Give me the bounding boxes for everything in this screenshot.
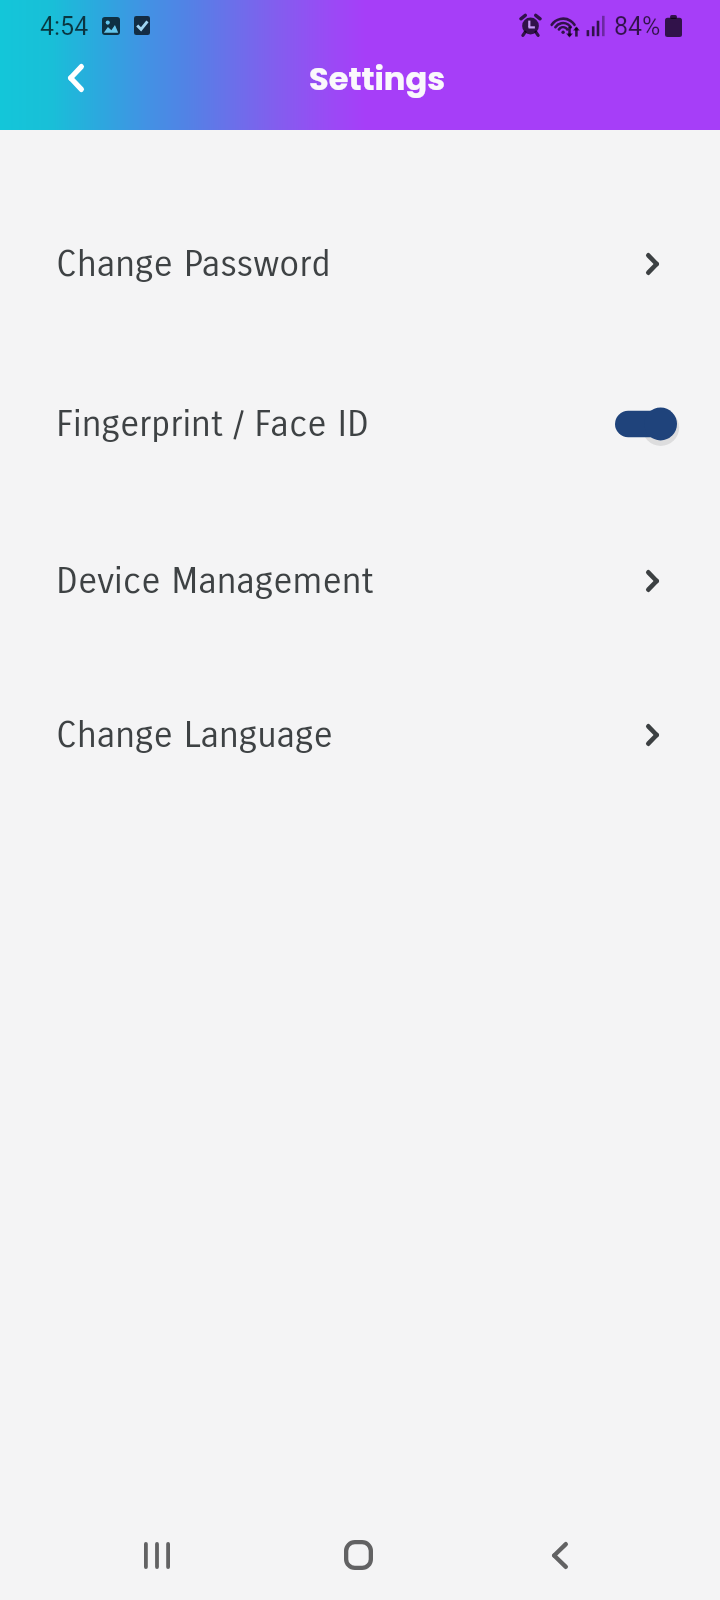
button[interactable]: Back [50, 52, 102, 104]
staticText: Device Management [56, 560, 374, 603]
button[interactable]: Change Language [0, 695, 720, 775]
staticText: Change Password [56, 243, 331, 286]
button[interactable]: Fingerprint / Face ID toggle [615, 404, 677, 444]
staticText: Change Language [56, 714, 333, 757]
button[interactable]: Fingerprint / Face ID [0, 384, 720, 464]
staticText: Settings [309, 56, 445, 101]
button[interactable]: Change Password [0, 224, 720, 304]
button[interactable]: Home [318, 1515, 398, 1595]
staticText: 4:54 [40, 12, 89, 41]
staticText: Fingerprint / Face ID [56, 403, 370, 446]
staticText: 84% [614, 12, 661, 41]
button[interactable]: Device Management [0, 541, 720, 621]
button[interactable]: Recent apps [117, 1515, 197, 1595]
button[interactable]: Back [520, 1515, 600, 1595]
